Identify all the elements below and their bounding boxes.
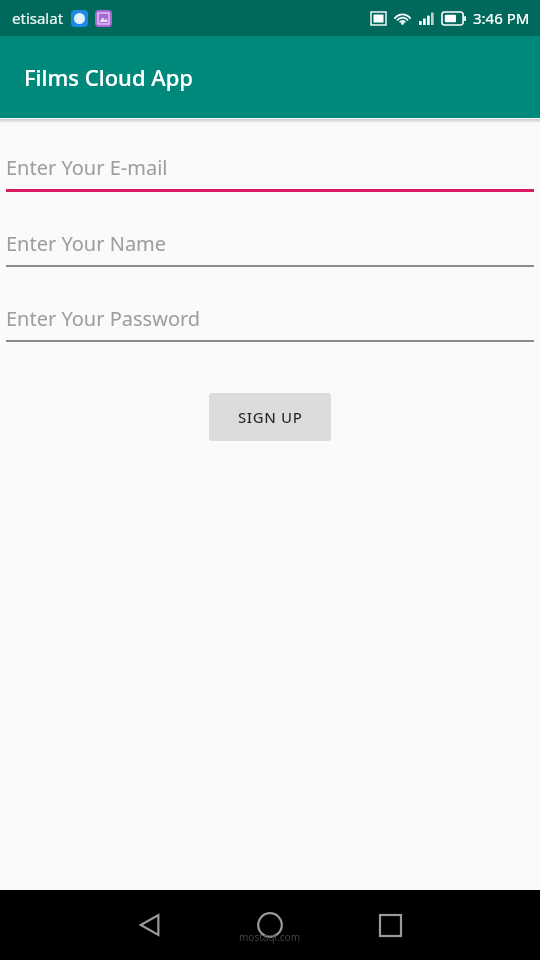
- button[interactable]: Home: [244, 899, 296, 951]
- staticText: Films Cloud App: [24, 62, 193, 92]
- button[interactable]: Enter Your Name: [6, 221, 534, 267]
- button[interactable]: Back: [124, 899, 176, 951]
- staticText: mostaql.com: [239, 930, 301, 944]
- staticText: 3:46 PM: [473, 8, 530, 28]
- button[interactable]: Recent apps: [364, 899, 416, 951]
- button[interactable]: Enter Your Password: [6, 296, 534, 342]
- button[interactable]: SIGN UP: [209, 393, 331, 441]
- staticText: Enter Your Name: [6, 230, 167, 257]
- staticText: etisalat: [12, 8, 64, 28]
- staticText: Enter Your E-mail: [6, 154, 168, 181]
- staticText: SIGN UP: [238, 407, 303, 427]
- staticText: Enter Your Password: [6, 305, 201, 332]
- button[interactable]: Enter Your E-mail: [6, 145, 534, 192]
